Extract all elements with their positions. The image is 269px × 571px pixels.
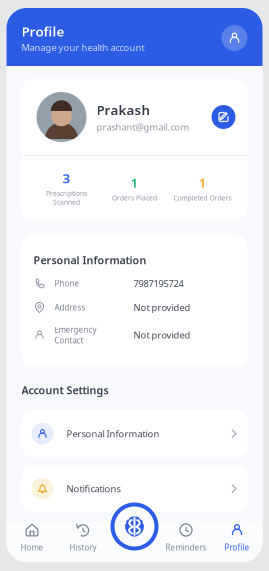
staticText: Home [20, 542, 43, 553]
staticText: Prescriptions [46, 189, 87, 198]
staticText: Not provided [133, 301, 190, 314]
staticText: Personal Information [66, 427, 159, 440]
staticText: Address [54, 302, 85, 313]
staticText: Notifications [66, 482, 120, 495]
button[interactable]: Scan [112, 504, 157, 549]
staticText: Scanned [53, 198, 80, 207]
button[interactable]: Reminders [160, 523, 211, 553]
staticText: Completed Orders [173, 193, 231, 202]
staticText: 1 [198, 174, 206, 191]
staticText: 7987195724 [133, 277, 183, 290]
staticText: Phone [54, 278, 79, 289]
button[interactable]: Home [6, 523, 57, 553]
button[interactable]: Profile [211, 523, 262, 553]
staticText: History [69, 542, 96, 553]
button[interactable]: Personal Information [21, 410, 247, 457]
staticText: Manage your health account [21, 41, 144, 54]
button[interactable]: Edit profile [211, 105, 235, 129]
staticText: 3 [62, 169, 70, 187]
staticText: Not provided [133, 329, 190, 341]
staticText: Emergency [54, 324, 96, 335]
staticText: prashant@gmail.com [96, 121, 189, 133]
button[interactable]: Account [221, 25, 247, 51]
staticText: Orders Placed [112, 193, 157, 202]
staticText: Account Settings [21, 383, 108, 397]
staticText: 1 [130, 174, 138, 191]
button[interactable]: History [57, 523, 108, 553]
button[interactable]: Notifications [21, 465, 247, 512]
staticText: Contact [54, 335, 83, 346]
staticText: Reminders [165, 542, 206, 553]
staticText: Profile [21, 22, 64, 40]
staticText: Personal Information [33, 253, 146, 267]
staticText: Prakash [96, 101, 150, 119]
staticText: Profile [224, 542, 249, 553]
